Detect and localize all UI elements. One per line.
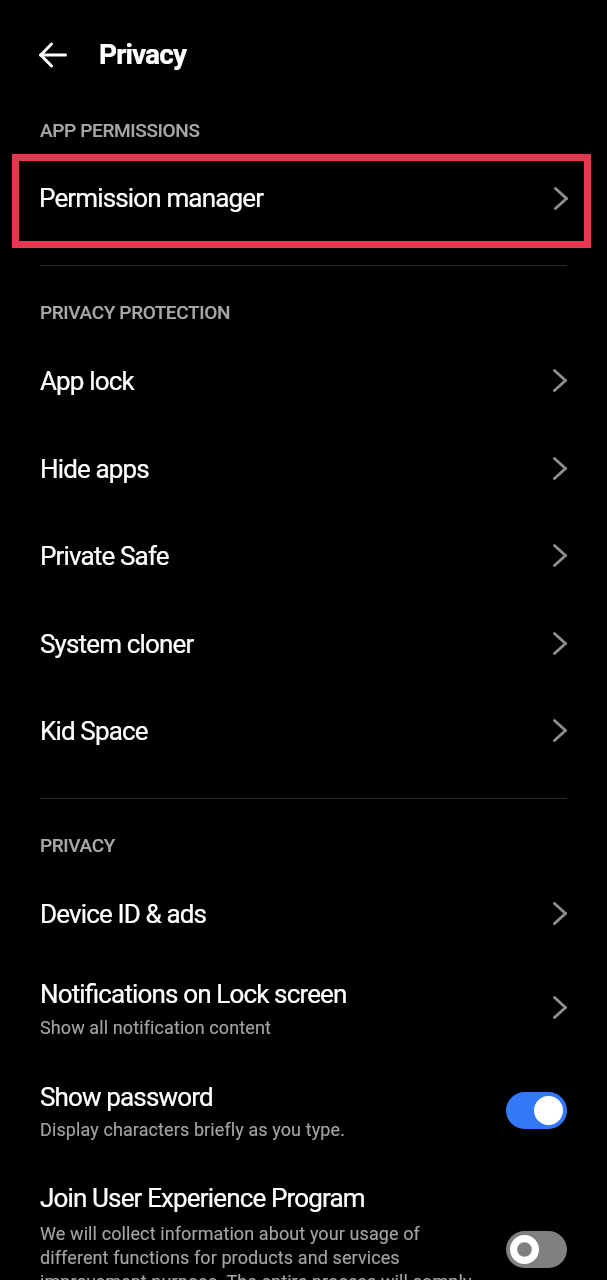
button[interactable]: App lock [0,338,607,426]
button[interactable]: Show password [0,1061,607,1161]
staticText: Show password [40,1082,213,1112]
staticText: Private Safe [40,541,169,571]
staticText: We will collect information about your u… [40,1223,510,1280]
staticText: System cloner [40,629,194,659]
button[interactable]: Join User Experience Program [0,1163,607,1280]
staticText: Device ID & ads [40,899,207,929]
button[interactable]: Switch off [506,1231,567,1268]
staticText: Notifications on Lock screen [40,979,347,1009]
staticText: Hide apps [40,454,149,484]
staticText: Permission manager [39,183,264,213]
staticText: Privacy [99,38,187,71]
button[interactable]: Hide apps [0,426,607,514]
button[interactable]: Device ID & ads [0,871,607,959]
staticText: APP PERMISSIONS [40,119,200,141]
staticText: Show all notification content [40,1017,500,1038]
staticText: Kid Space [40,716,148,746]
staticText: Display characters briefly as you type. [40,1119,500,1140]
button[interactable]: Back [25,26,81,83]
staticText: Join User Experience Program [40,1183,365,1213]
staticText: App lock [40,366,134,396]
button[interactable]: Kid Space [0,688,607,776]
button[interactable]: Notifications on Lock screen [0,959,607,1059]
button[interactable]: Switch on [506,1092,567,1129]
button[interactable]: Private Safe [0,513,607,601]
staticText: PRIVACY PROTECTION [40,301,231,323]
button[interactable]: Permission manager [12,154,591,248]
staticText: PRIVACY [40,834,115,856]
button[interactable]: System cloner [0,601,607,689]
